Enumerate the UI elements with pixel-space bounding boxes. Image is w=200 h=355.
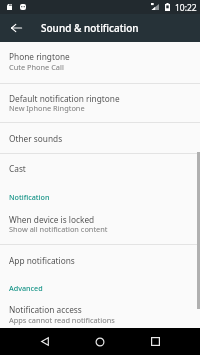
staticText: Notification access [9,304,82,315]
staticText: Show all notification content [9,224,108,234]
staticText: Notification [9,192,50,202]
button[interactable]: Other sounds [0,123,200,153]
button[interactable]: Notification access [0,294,200,328]
button[interactable]: Home [87,328,112,355]
staticText: Phone ringtone [9,51,70,62]
staticText: Other sounds [9,133,63,144]
staticText: Cast [9,163,26,174]
button[interactable]: Back [32,328,57,355]
staticText: Apps cannot read notifications [9,315,115,325]
button[interactable]: Cast [0,154,200,183]
staticText: App notifications [9,255,75,266]
button[interactable]: Navigate up [0,14,28,42]
staticText: New Iphone Ringtone [9,103,85,113]
button[interactable]: Default notification ringtone [0,84,200,122]
button[interactable]: When device is locked [0,204,200,244]
button[interactable]: Phone ringtone [0,42,200,83]
staticText: Cute Phone Call [9,62,64,72]
staticText: 10:22 [175,2,197,14]
staticText: Default notification ringtone [9,93,120,104]
button[interactable]: Recent apps [143,328,168,355]
button[interactable]: App notifications [0,245,200,275]
staticText: Advanced [9,283,43,293]
staticText: Sound & notification [41,21,139,35]
staticText: When device is locked [9,214,95,225]
